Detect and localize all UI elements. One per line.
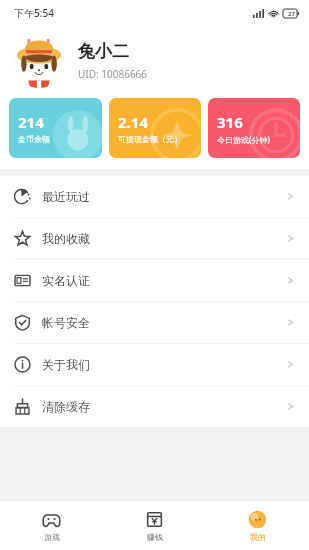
staticText: 27: [288, 10, 295, 18]
button[interactable]: 清除缓存: [0, 386, 309, 427]
button[interactable]: 最近玩过: [0, 176, 309, 217]
staticText: 金币余额: [18, 134, 50, 144]
staticText: 今日游戏(分钟): [217, 134, 270, 145]
button[interactable]: 赚钱: [103, 501, 206, 550]
staticText: 赚钱: [147, 532, 163, 542]
staticText: 帐号安全: [42, 315, 90, 330]
button[interactable]: 我的: [206, 501, 309, 550]
staticText: 2.14: [118, 112, 148, 132]
staticText: 214: [18, 112, 44, 132]
staticText: 游戏: [44, 532, 60, 542]
button[interactable]: 实名认证: [0, 260, 309, 301]
staticText: 可提现金额（元）: [118, 134, 182, 144]
button[interactable]: 2.14: [109, 98, 201, 158]
staticText: 我的收藏: [42, 231, 90, 246]
staticText: 316: [217, 112, 243, 132]
button[interactable]: 帐号安全: [0, 302, 309, 343]
button[interactable]: 关于我们: [0, 344, 309, 385]
staticText: 兔小二: [78, 41, 129, 62]
staticText: 实名认证: [42, 273, 90, 288]
staticText: 我的: [250, 532, 266, 542]
staticText: UID: 10086666: [78, 67, 148, 81]
staticText: 下午5:54: [14, 6, 54, 20]
staticText: 关于我们: [42, 357, 90, 372]
button[interactable]: 我的收藏: [0, 218, 309, 259]
staticText: 最近玩过: [42, 189, 90, 204]
button[interactable]: 214: [9, 98, 102, 158]
button[interactable]: 316: [208, 98, 300, 158]
button[interactable]: 游戏: [0, 501, 103, 550]
staticText: 清除缓存: [42, 399, 90, 414]
button[interactable]: Avatar: [12, 34, 66, 88]
